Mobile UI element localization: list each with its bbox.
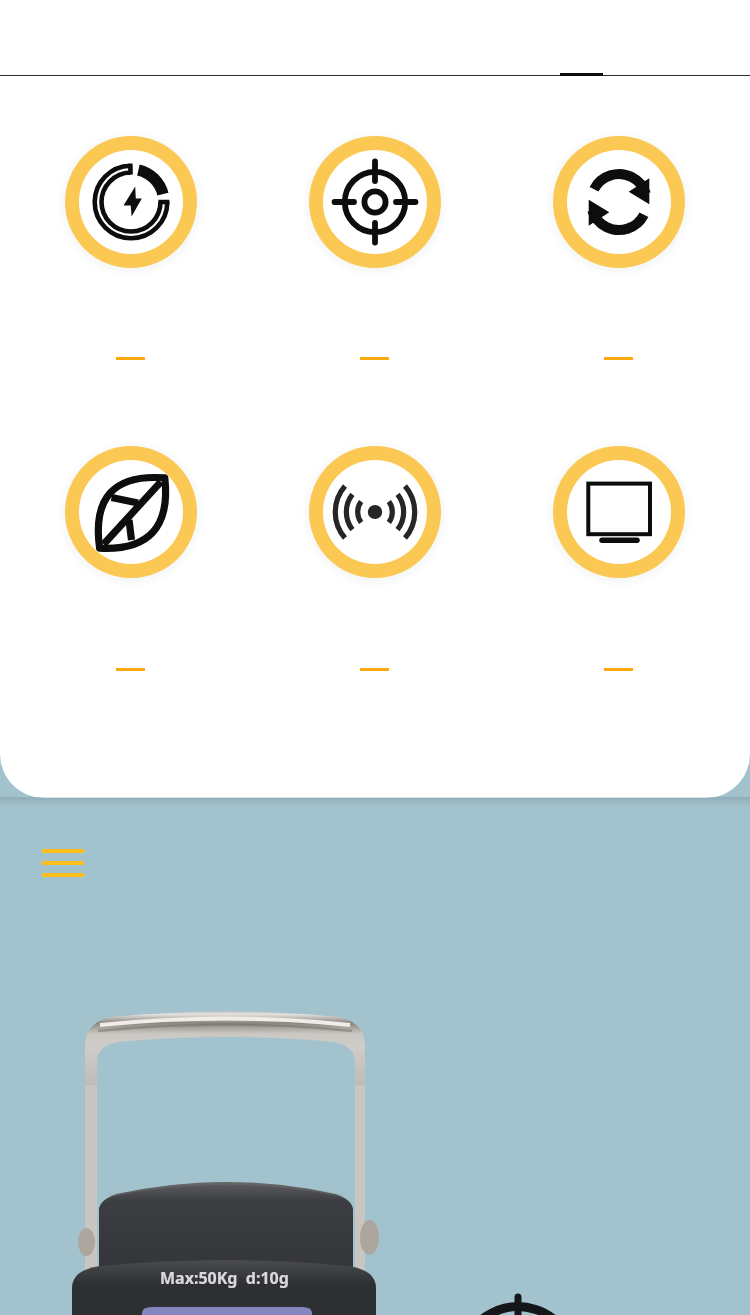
staticText: Max:50Kg d:10g <box>160 1267 289 1289</box>
button[interactable]: Fast charging <box>65 136 197 268</box>
button[interactable]: Menu <box>42 849 84 877</box>
button[interactable]: Auto switch <box>553 136 685 268</box>
button[interactable]: Display <box>553 446 685 578</box>
button[interactable]: Precision <box>309 136 441 268</box>
button[interactable]: Energy saving <box>65 446 197 578</box>
button[interactable]: Wireless <box>309 446 441 578</box>
